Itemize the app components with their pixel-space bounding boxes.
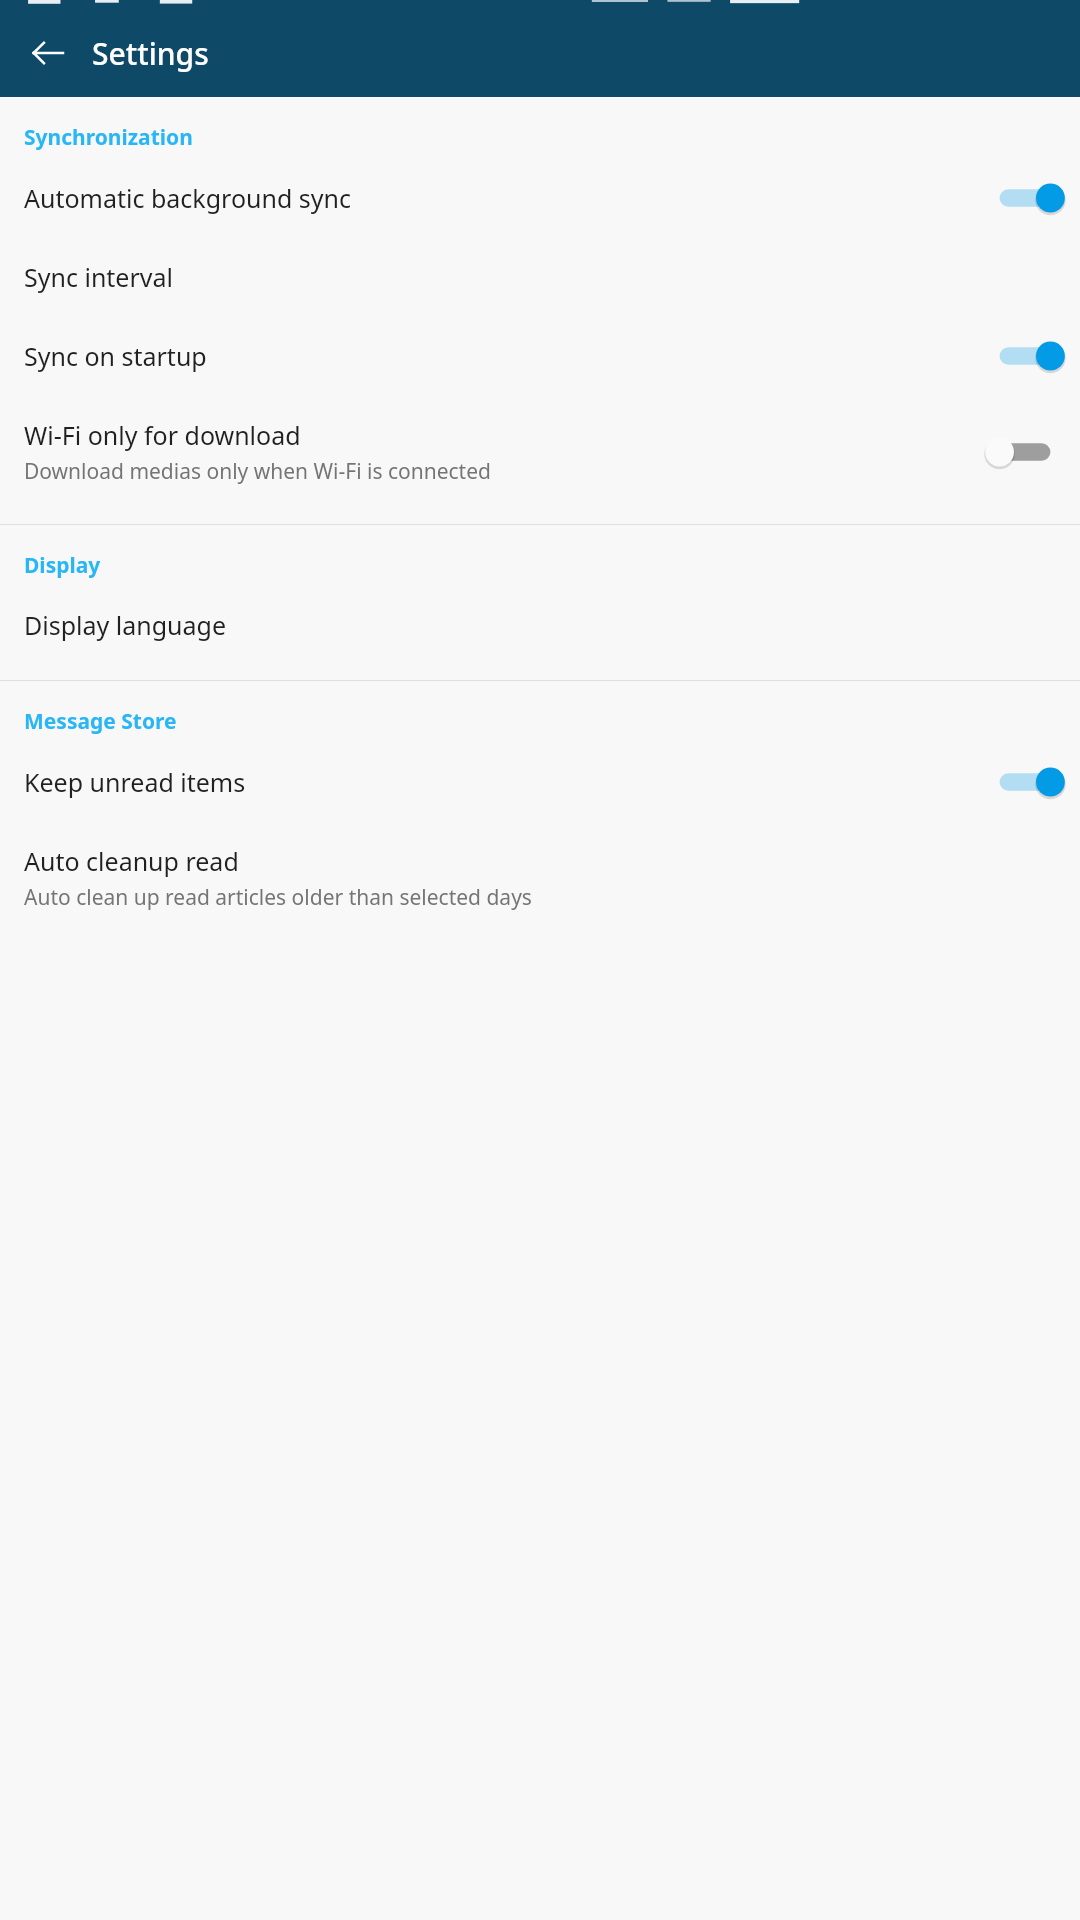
- button[interactable]: Back: [18, 23, 78, 83]
- staticText: Sync interval: [24, 260, 173, 294]
- button[interactable]: Wi-Fi only for download: [0, 396, 1080, 508]
- staticText: Auto clean up read articles older than s…: [24, 883, 850, 912]
- button[interactable]: Toggle off: [994, 434, 1056, 470]
- staticText: Display language: [24, 608, 227, 642]
- staticText: Wi-Fi only for download: [24, 418, 301, 452]
- staticText: Automatic background sync: [24, 181, 351, 215]
- button[interactable]: Auto cleanup read: [0, 822, 1080, 934]
- button[interactable]: Toggle on: [994, 338, 1056, 374]
- button[interactable]: Display language: [0, 586, 1080, 664]
- staticText: Auto cleanup read: [24, 844, 239, 878]
- staticText: Message Store: [24, 707, 177, 736]
- button[interactable]: Sync on startup: [0, 316, 1080, 396]
- staticText: Synchronization: [24, 123, 193, 152]
- button[interactable]: Toggle on: [994, 180, 1056, 216]
- button[interactable]: Automatic background sync: [0, 158, 1080, 238]
- staticText: Display: [24, 551, 101, 580]
- button[interactable]: Toggle on: [994, 764, 1056, 800]
- button[interactable]: Sync interval: [0, 238, 1080, 316]
- staticText: Keep unread items: [24, 765, 246, 799]
- staticText: Settings: [92, 33, 209, 74]
- staticText: Download medias only when Wi-Fi is conne…: [24, 457, 790, 486]
- staticText: Sync on startup: [24, 339, 207, 373]
- button[interactable]: Keep unread items: [0, 742, 1080, 822]
